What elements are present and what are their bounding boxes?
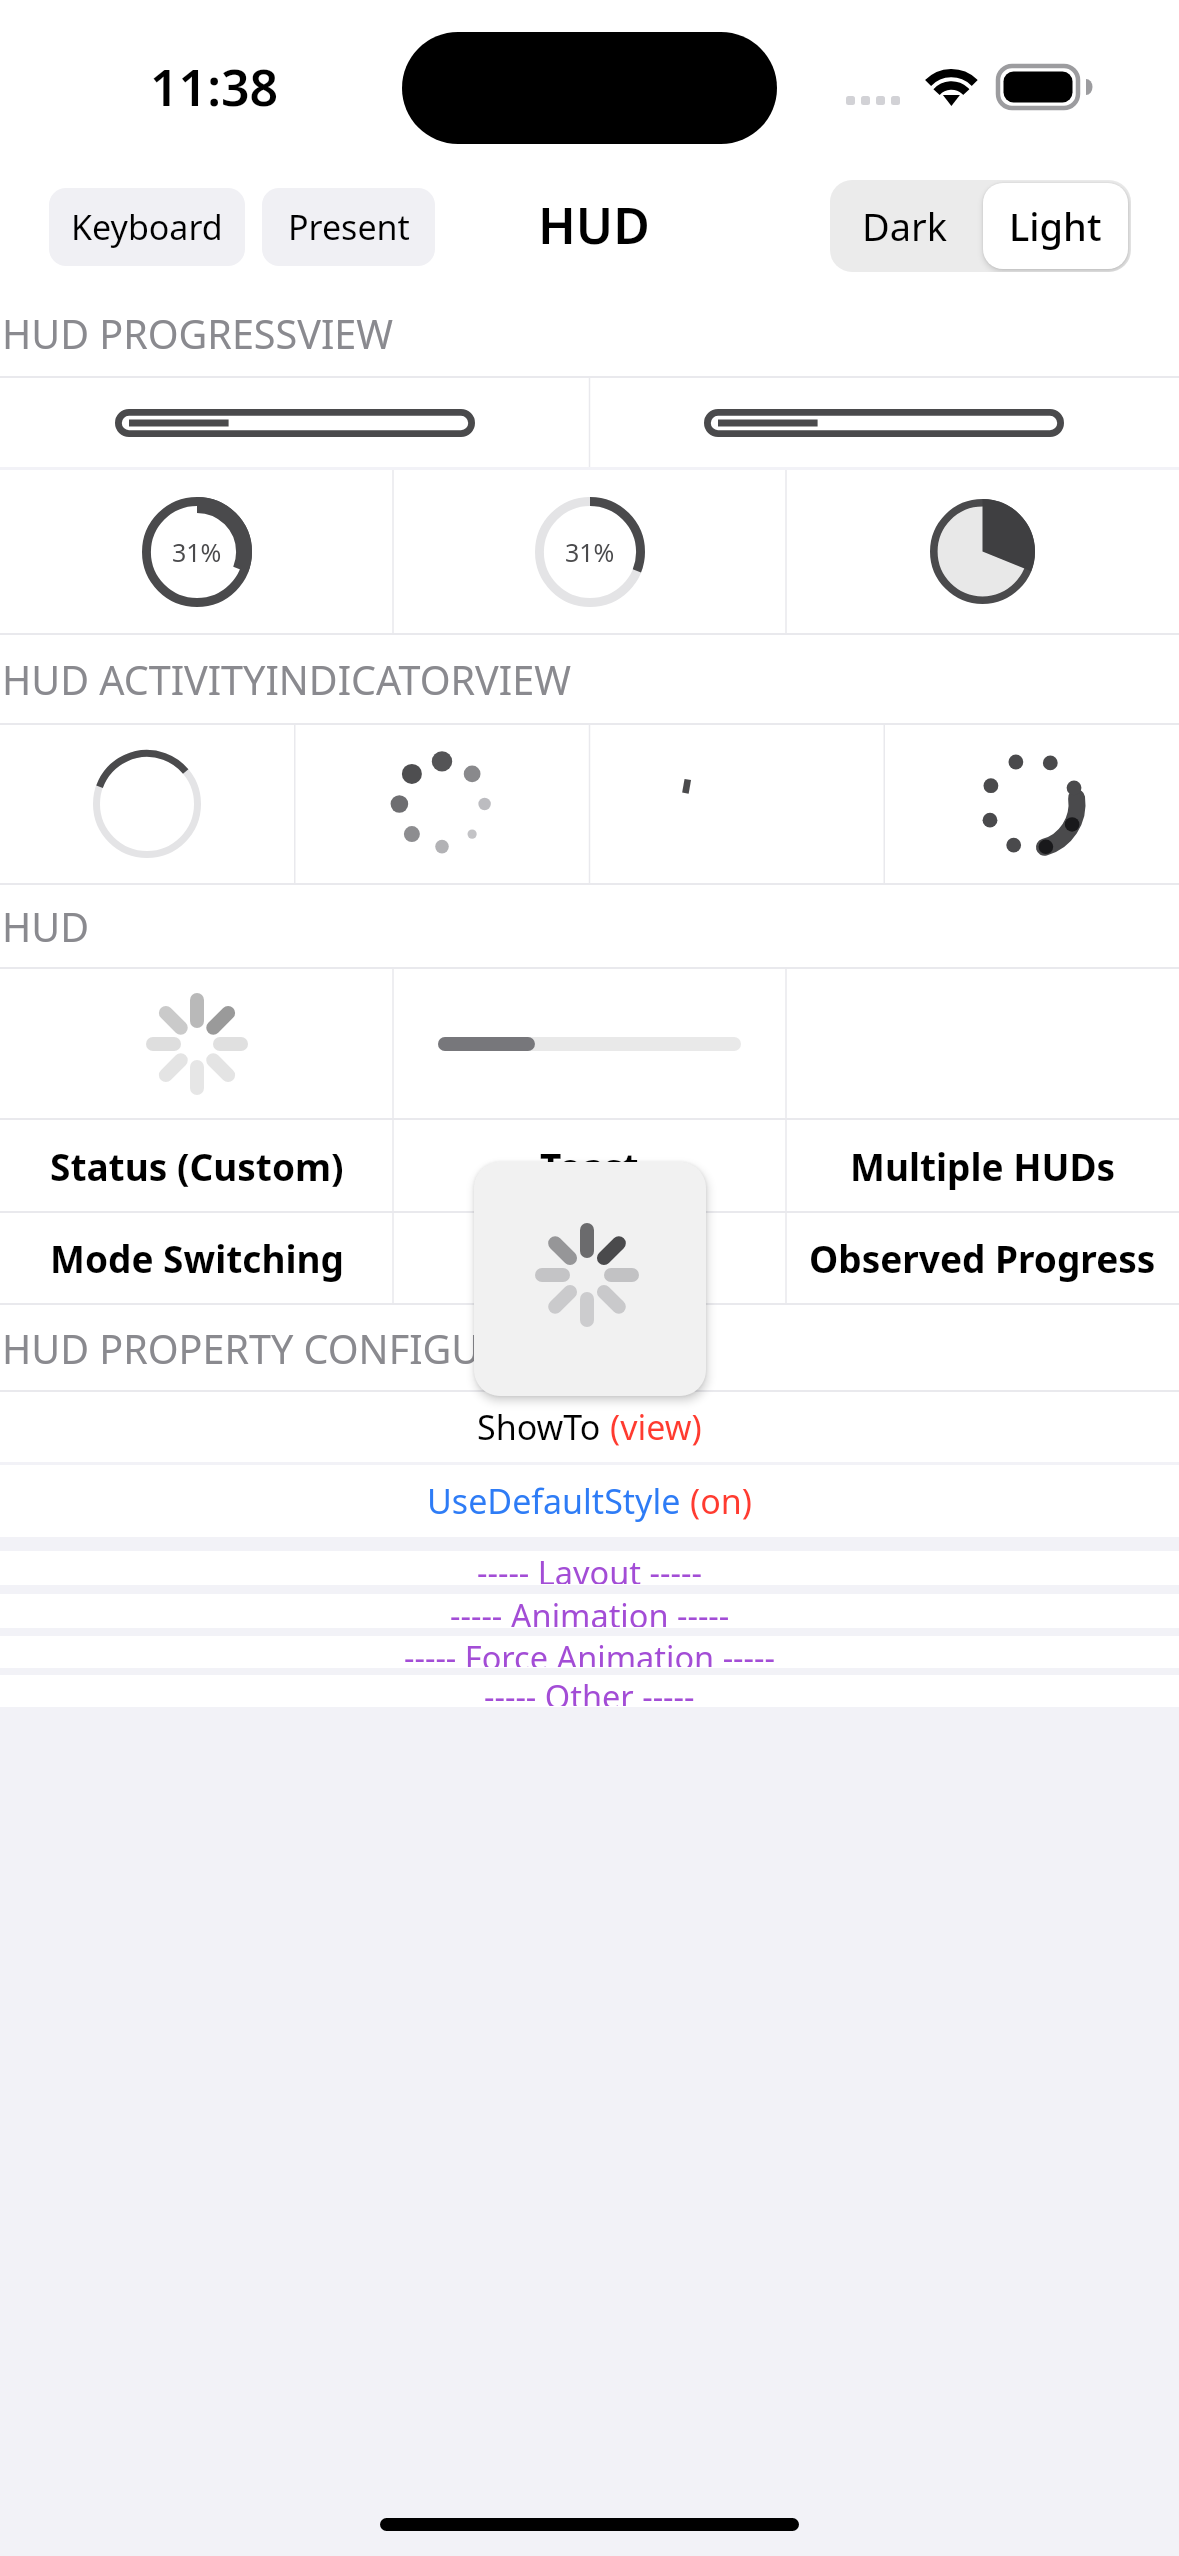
staticText: ShowTo bbox=[477, 1404, 610, 1450]
button[interactable]: Present bbox=[262, 188, 435, 266]
button[interactable]: ----- Force Animation ----- bbox=[0, 1636, 1179, 1668]
staticText: HUD PROPERTY CONFIGURATION bbox=[2, 1322, 624, 1376]
staticText: (on) bbox=[690, 1478, 752, 1524]
button[interactable]: Dot activity indicator bbox=[294, 725, 589, 883]
button[interactable]: Bar progress dark bbox=[0, 378, 589, 467]
staticText: Toast bbox=[540, 1141, 639, 1191]
button[interactable]: Bar progress light bbox=[589, 378, 1179, 467]
button[interactable]: ----- Animation ----- bbox=[0, 1594, 1179, 1628]
staticText: Light bbox=[1009, 200, 1102, 252]
staticText: 31% bbox=[172, 535, 222, 569]
button[interactable]: Multiple HUDs bbox=[786, 1120, 1179, 1211]
staticText: Mode Switching bbox=[50, 1233, 344, 1283]
button[interactable]: Observed Progress bbox=[786, 1213, 1179, 1303]
staticText: 11:38 bbox=[150, 53, 279, 121]
button[interactable]: Dark bbox=[830, 180, 980, 272]
button[interactable]: ShowTo bbox=[0, 1392, 1179, 1462]
button[interactable]: Show HUD spinner bbox=[0, 969, 393, 1118]
button[interactable]: Pie progress bbox=[786, 470, 1179, 633]
staticText: Keyboard bbox=[71, 204, 223, 250]
staticText: ----- Force Animation ----- bbox=[404, 1635, 775, 1667]
button[interactable]: Status (Custom) bbox=[0, 1120, 393, 1211]
button[interactable]: ----- Layout ----- bbox=[0, 1551, 1179, 1585]
button[interactable]: Light bbox=[983, 183, 1128, 269]
staticText: ----- Layout ----- bbox=[477, 1550, 702, 1584]
button[interactable]: Ring progress 31 percent dark bbox=[0, 470, 393, 633]
staticText: 31% bbox=[565, 535, 615, 569]
button[interactable]: Keyboard bbox=[49, 188, 245, 266]
button[interactable]: Ring progress 31 percent light bbox=[393, 470, 786, 633]
staticText: Dark bbox=[862, 200, 948, 252]
staticText: ----- Other ----- bbox=[484, 1674, 695, 1706]
staticText: Status (Custom) bbox=[50, 1141, 344, 1191]
button[interactable]: Show HUD progress bar bbox=[393, 969, 786, 1118]
staticText: HUD bbox=[538, 191, 650, 259]
button[interactable]: ----- Other ----- bbox=[0, 1675, 1179, 1707]
staticText: ----- Animation ----- bbox=[450, 1593, 730, 1627]
staticText: HUD bbox=[2, 900, 89, 954]
staticText: Observed Progress bbox=[809, 1233, 1156, 1283]
staticText: HUD ACTIVITYINDICATORVIEW bbox=[2, 653, 571, 707]
button[interactable]: Toast bbox=[393, 1120, 786, 1211]
button[interactable]: Ball activity indicator bbox=[884, 725, 1179, 883]
button[interactable]: Small activity indicator bbox=[589, 725, 884, 883]
staticText: HUD PROGRESSVIEW bbox=[2, 307, 394, 361]
staticText: (view) bbox=[610, 1404, 702, 1450]
staticText: Multiple HUDs bbox=[850, 1141, 1116, 1191]
staticText: Present bbox=[288, 204, 410, 250]
button[interactable]: Mode Switching bbox=[0, 1213, 393, 1303]
button[interactable] bbox=[393, 1213, 786, 1303]
button[interactable]: Ring activity indicator bbox=[0, 725, 294, 883]
button[interactable]: UseDefaultStyle bbox=[0, 1465, 1179, 1537]
staticText: UseDefaultStyle bbox=[427, 1478, 690, 1524]
